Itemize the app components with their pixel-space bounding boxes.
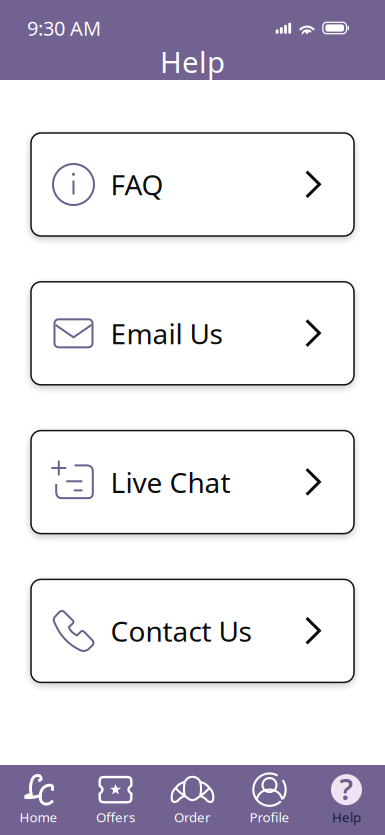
- button[interactable]: Profile: [231, 765, 308, 835]
- staticText: Order: [174, 808, 211, 826]
- staticText: Profile: [249, 808, 289, 826]
- staticText: Help: [332, 808, 361, 826]
- button[interactable]: Email Us: [31, 282, 354, 385]
- staticText: Help: [160, 42, 225, 81]
- button[interactable]: Order: [154, 765, 231, 835]
- button[interactable]: Offers: [77, 765, 154, 835]
- staticText: Live Chat: [110, 463, 230, 501]
- staticText: FAQ: [110, 166, 163, 203]
- staticText: 9:30 AM: [27, 15, 101, 41]
- button[interactable]: Live Chat: [31, 431, 354, 534]
- staticText: Email Us: [110, 315, 222, 352]
- button[interactable]: ?: [308, 765, 385, 835]
- staticText: Contact Us: [110, 612, 251, 649]
- staticText: ?: [339, 769, 353, 808]
- button[interactable]: FAQ: [31, 133, 354, 236]
- staticText: Offers: [96, 808, 135, 826]
- staticText: Home: [19, 808, 57, 826]
- button[interactable]: Home: [0, 765, 77, 835]
- button[interactable]: Contact Us: [31, 579, 354, 682]
